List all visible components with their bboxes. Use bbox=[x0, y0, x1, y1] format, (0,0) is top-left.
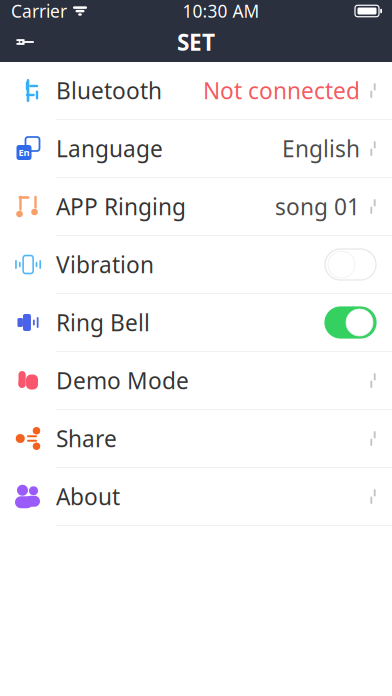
button[interactable]: En bbox=[0, 120, 392, 178]
button[interactable]: Share bbox=[0, 410, 392, 468]
staticText: Ring Bell bbox=[56, 307, 150, 337]
staticText: En bbox=[18, 146, 29, 159]
button[interactable]: Ring Bell bbox=[0, 294, 392, 352]
button[interactable]: Back bbox=[0, 22, 48, 62]
staticText: Share bbox=[56, 423, 117, 453]
staticText: English bbox=[282, 133, 360, 163]
staticText: 10:30 AM bbox=[182, 0, 259, 22]
button[interactable]: Bluetooth bbox=[0, 62, 392, 120]
staticText: song 01 bbox=[275, 191, 360, 221]
button[interactable]: Demo Mode bbox=[0, 352, 392, 410]
staticText: SET bbox=[177, 27, 215, 57]
button[interactable]: APP Ringing bbox=[0, 178, 392, 236]
staticText: About bbox=[56, 481, 120, 511]
staticText: Not connected bbox=[203, 75, 360, 105]
staticText: APP Ringing bbox=[56, 191, 186, 221]
button[interactable]: About bbox=[0, 468, 392, 526]
staticText: Vibration bbox=[56, 249, 154, 279]
staticText: Carrier bbox=[11, 0, 67, 22]
staticText: Language bbox=[56, 133, 163, 163]
staticText: Bluetooth bbox=[56, 75, 162, 105]
staticText: Demo Mode bbox=[56, 365, 189, 395]
button[interactable]: Vibration bbox=[0, 236, 392, 294]
